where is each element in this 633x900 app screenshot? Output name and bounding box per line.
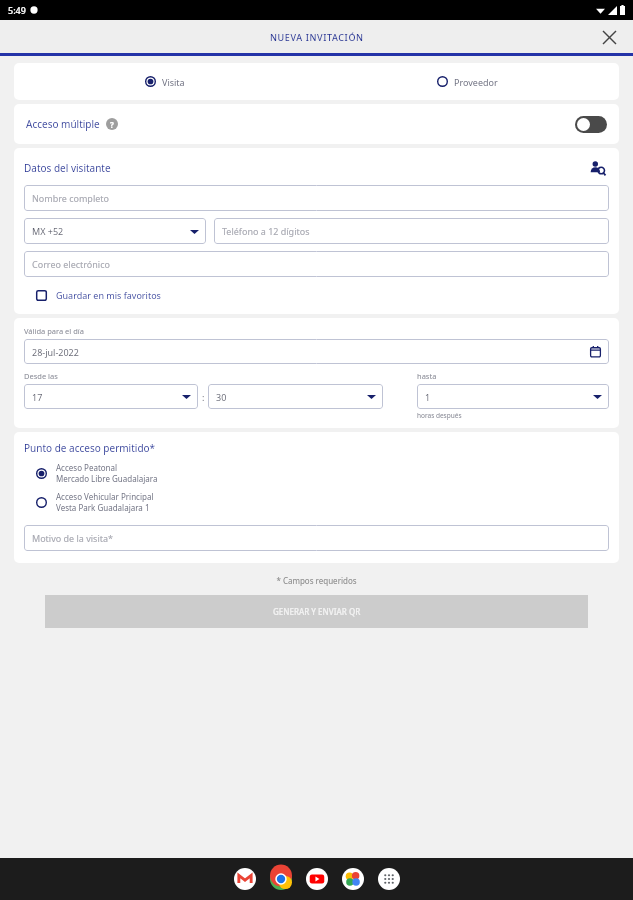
button[interactable]: Teléfono a 12 dígitos	[214, 218, 609, 244]
staticText: Nombre completo	[32, 192, 109, 204]
button[interactable]: MX +52	[24, 218, 206, 244]
button[interactable]: Ayuda	[106, 118, 118, 130]
staticText: 17	[32, 391, 43, 403]
button[interactable]: Acceso múltiple	[575, 116, 607, 133]
staticText: Acceso Vehicular Principal	[56, 491, 154, 502]
staticText: 28-jul-2022	[32, 346, 79, 358]
button[interactable]: Motivo de la visita*	[24, 525, 609, 551]
button[interactable]: Todas las apps	[376, 866, 402, 892]
staticText: Datos del visitante	[24, 161, 111, 175]
staticText: Válida para el día	[24, 326, 84, 336]
button[interactable]: Buscar visitante	[585, 156, 609, 180]
button[interactable]: Gmail	[232, 866, 258, 892]
staticText: Proveedor	[454, 76, 498, 88]
staticText: MX +52	[32, 225, 64, 237]
staticText: :	[202, 391, 205, 403]
button[interactable]: 30	[208, 384, 383, 409]
staticText: GENERAR Y ENVIAR QR	[273, 606, 361, 617]
staticText: NUEVA INVITACIÓN	[270, 31, 364, 43]
staticText: Vesta Park Guadalajara 1	[56, 502, 150, 513]
staticText: Desde las	[24, 371, 58, 381]
button[interactable]: Guardar en mis favoritos	[24, 285, 609, 305]
button[interactable]: 17	[24, 384, 198, 409]
staticText: Teléfono a 12 dígitos	[222, 225, 310, 237]
staticText: Correo electrónico	[32, 258, 110, 270]
staticText: Acceso Peatonal	[56, 462, 118, 473]
button[interactable]: Acceso Vehicular Principal	[24, 489, 609, 515]
button[interactable]: Proveedor	[316, 63, 619, 100]
staticText: Motivo de la visita*	[32, 532, 113, 544]
staticText: 1	[425, 391, 431, 403]
button[interactable]: Acceso Peatonal	[24, 460, 609, 486]
staticText: Visita	[162, 76, 185, 88]
staticText: 30	[216, 391, 227, 403]
staticText: hasta	[417, 371, 437, 381]
button[interactable]: Nombre completo	[24, 185, 609, 211]
staticText: 5:49	[8, 4, 26, 16]
button[interactable]: Google Photos	[340, 866, 366, 892]
button[interactable]: Visita	[14, 63, 316, 100]
staticText: horas después	[417, 411, 462, 420]
staticText: Guardar en mis favoritos	[56, 289, 161, 301]
staticText: Mercado Libre Guadalajara	[56, 473, 158, 484]
button[interactable]: YouTube	[304, 866, 330, 892]
staticText: * Campos requeridos	[0, 575, 633, 586]
staticText: Punto de acceso permitido*	[24, 441, 156, 455]
staticText: Acceso múltiple	[26, 117, 100, 131]
button[interactable]: Cerrar	[595, 23, 623, 51]
button[interactable]: 1	[417, 384, 609, 409]
staticText: ?	[110, 119, 114, 130]
button[interactable]: Chrome	[268, 866, 294, 892]
button[interactable]: 28-jul-2022	[24, 339, 609, 364]
button[interactable]: GENERAR Y ENVIAR QR	[45, 595, 588, 628]
button[interactable]: Correo electrónico	[24, 251, 609, 277]
